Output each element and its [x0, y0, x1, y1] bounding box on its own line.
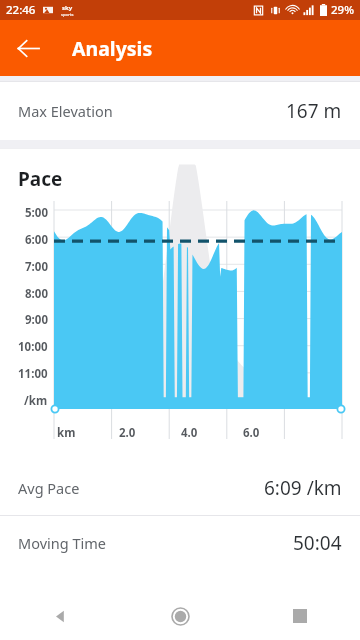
- button[interactable]: Avg Pace: [0, 461, 360, 515]
- staticText: 2.0: [119, 425, 136, 441]
- staticText: 6:00: [25, 232, 48, 248]
- staticText: Analysis: [72, 35, 153, 62]
- staticText: 8:00: [25, 286, 48, 302]
- button[interactable]: Moving Time: [0, 516, 360, 570]
- staticText: 5:00: [25, 205, 48, 221]
- staticText: 22:46: [6, 2, 36, 18]
- button[interactable]: Home: [120, 592, 240, 640]
- staticText: 9:00: [25, 312, 48, 328]
- staticText: 6:09 /km: [264, 475, 342, 501]
- staticText: 4.0: [181, 425, 198, 441]
- staticText: 29%: [331, 2, 354, 18]
- staticText: sky: [62, 4, 73, 12]
- staticText: sports: [61, 12, 74, 17]
- staticText: 11:00: [18, 366, 48, 382]
- button[interactable]: Back: [0, 20, 56, 76]
- staticText: 167 m: [286, 98, 342, 124]
- staticText: Avg Pace: [18, 478, 80, 498]
- button[interactable]: Back: [0, 592, 120, 640]
- staticText: 7:00: [25, 259, 48, 275]
- button[interactable]: Recent apps: [240, 592, 360, 640]
- button[interactable]: Max Elevation: [0, 82, 360, 140]
- staticText: km: [57, 425, 76, 441]
- staticText: /km: [24, 393, 48, 409]
- staticText: 6.0: [243, 425, 260, 441]
- staticText: Max Elevation: [18, 101, 113, 121]
- staticText: 10:00: [18, 339, 48, 355]
- staticText: 50:04: [293, 530, 342, 556]
- staticText: Moving Time: [18, 533, 106, 553]
- staticText: Pace: [18, 166, 63, 192]
